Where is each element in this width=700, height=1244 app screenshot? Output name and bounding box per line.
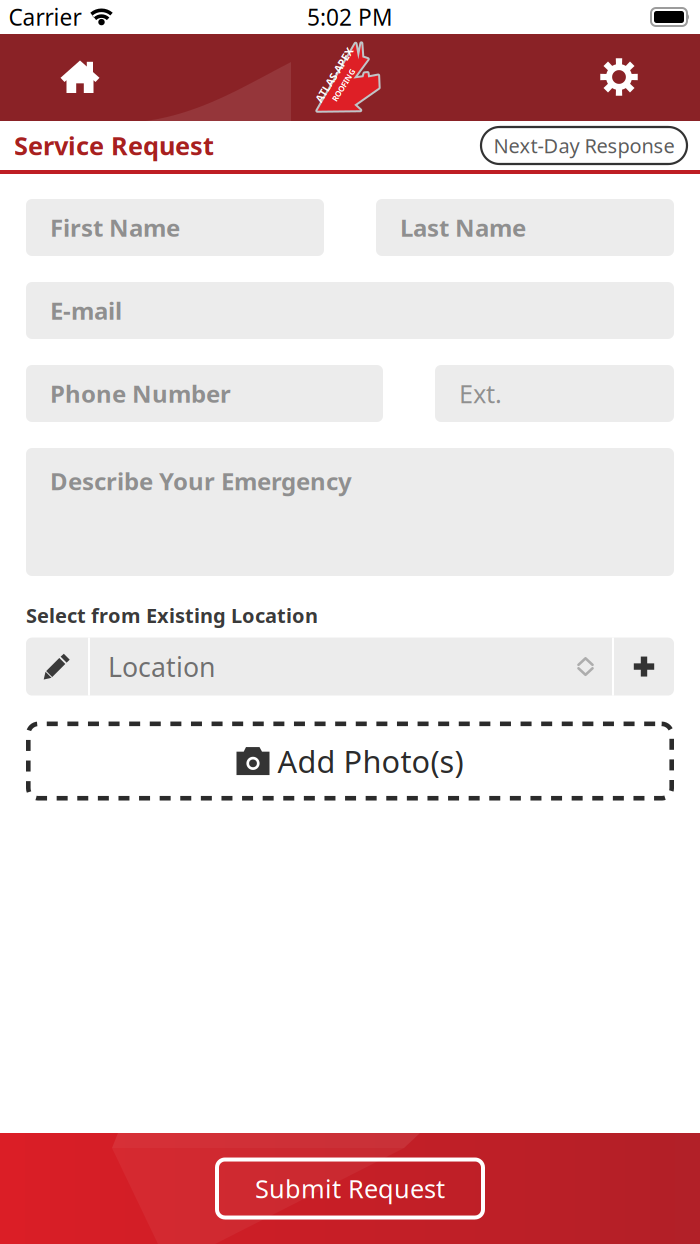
staticText: First Name — [50, 212, 180, 243]
staticText: ATLAS-APEX — [308, 65, 370, 79]
staticText: Phone Number — [50, 378, 231, 409]
staticText: 5:02 PM — [307, 2, 393, 32]
button[interactable]: Add Photo(s) — [26, 722, 674, 801]
staticText: Submit Request — [255, 1172, 445, 1205]
button[interactable]: Next-Day Response — [481, 127, 687, 164]
staticText: Select from Existing Location — [26, 602, 318, 629]
staticText: Add Photo(s) — [277, 741, 463, 781]
staticText: Service Request — [14, 129, 214, 162]
button[interactable]: Submit Request — [217, 1159, 483, 1217]
button[interactable]: Edit location — [26, 638, 88, 696]
staticText: Ext. — [459, 377, 502, 410]
staticText: Carrier — [8, 2, 81, 32]
staticText: Describe Your Emergency — [50, 465, 352, 497]
staticText: Location — [108, 649, 215, 684]
button[interactable]: Home — [32, 33, 128, 120]
button[interactable]: Settings — [571, 33, 667, 120]
button[interactable]: Add location — [614, 638, 674, 696]
staticText: Next-Day Response — [493, 132, 674, 159]
button[interactable]: Location — [90, 638, 612, 696]
staticText: ROOFING — [317, 80, 354, 91]
staticText: E-mail — [50, 295, 122, 326]
staticText: Last Name — [400, 212, 526, 243]
